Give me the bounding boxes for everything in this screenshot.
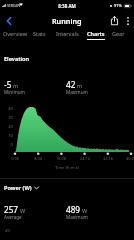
button[interactable]: Intervals	[49, 30, 85, 44]
button[interactable]: Stats	[27, 30, 51, 44]
staticText: Stats	[33, 30, 46, 37]
button[interactable]: Charts	[82, 30, 109, 44]
button[interactable]: Back	[0, 12, 18, 29]
staticText: 257	[4, 204, 19, 215]
staticText: Power (W)	[4, 184, 32, 192]
staticText: 8:04	[29, 156, 47, 161]
staticText: Intervals	[56, 30, 79, 37]
staticText: 0	[1, 142, 13, 148]
staticText: 40:20	[122, 156, 134, 161]
staticText: 30	[1, 115, 13, 121]
staticText: 8:38 AM	[0, 3, 134, 9]
staticText: 91%	[114, 3, 122, 8]
staticText: 489	[66, 204, 81, 215]
staticText: 16:08	[52, 156, 70, 161]
button[interactable]: More options	[122, 12, 134, 29]
staticText: Average	[4, 214, 22, 220]
button[interactable]: Gear	[108, 30, 128, 44]
staticText: 10	[1, 133, 13, 139]
staticText: Maximum	[66, 214, 88, 220]
staticText: Minimum	[4, 89, 25, 95]
staticText: Running	[52, 16, 82, 26]
staticText: 40	[5, 228, 10, 234]
staticText: Gear	[112, 30, 125, 37]
staticText: Time (h:m:s)	[0, 165, 134, 171]
staticText: m	[77, 82, 83, 89]
button[interactable]: Share	[107, 12, 122, 29]
button[interactable]: Power (W)	[4, 184, 39, 192]
staticText: 40	[1, 106, 13, 112]
staticText: W	[82, 207, 88, 214]
staticText: W	[20, 207, 26, 214]
staticText: 32:16	[99, 156, 117, 161]
staticText: 0:00	[6, 156, 24, 161]
staticText: Elevation	[4, 55, 30, 63]
staticText: Overview	[3, 30, 27, 37]
staticText: -5	[4, 79, 12, 90]
staticText: Charts	[87, 30, 105, 37]
staticText: 24:12	[76, 156, 94, 161]
staticText: 20	[1, 124, 13, 130]
button[interactable]: Overview	[0, 30, 31, 44]
staticText: VIRGIN	[7, 3, 21, 8]
staticText: Maximum	[66, 89, 88, 95]
staticText: m	[13, 82, 19, 89]
staticText: 42	[66, 79, 76, 90]
